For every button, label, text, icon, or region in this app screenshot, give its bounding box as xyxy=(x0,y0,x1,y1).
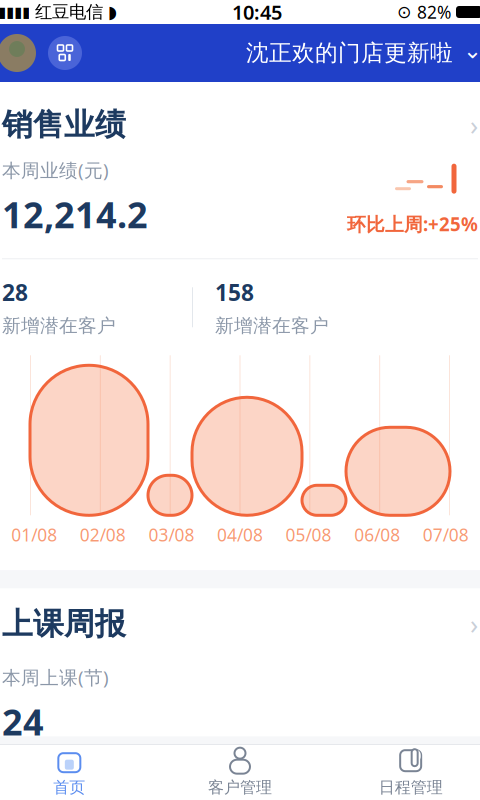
staticText: 10:45 xyxy=(232,0,282,25)
button[interactable]: 销售业绩 xyxy=(0,82,480,158)
staticText: 07/08 xyxy=(423,523,469,546)
staticText: 24 xyxy=(2,698,44,745)
button[interactable]: 个人头像 xyxy=(0,34,36,72)
staticText: 03/08 xyxy=(148,523,194,546)
staticText: ◗ xyxy=(108,2,117,22)
staticText: 红豆电信 xyxy=(35,1,103,23)
staticText: 02/08 xyxy=(80,523,126,546)
staticText: 新增潜在客户 xyxy=(215,314,329,337)
staticText: ⊙ xyxy=(397,2,412,22)
staticText: 上课周报 xyxy=(2,605,126,643)
staticText: 04/08 xyxy=(217,523,263,546)
staticText: › xyxy=(470,606,478,642)
button[interactable]: 日程管理 xyxy=(325,745,480,800)
staticText: 12,214.2 xyxy=(2,190,148,238)
staticText: 客户管理 xyxy=(208,778,272,797)
staticText: › xyxy=(470,107,478,142)
button[interactable]: 上课周报 xyxy=(0,588,480,736)
staticText: ⌄ xyxy=(463,38,480,63)
staticText: 28 xyxy=(2,277,28,307)
staticText: 01/08 xyxy=(11,523,57,546)
staticText: 销售业绩 xyxy=(2,106,126,144)
staticText: 05/08 xyxy=(286,523,332,546)
staticText: ▮▮▮▮ xyxy=(0,4,30,20)
staticText: 本周业绩(元) xyxy=(2,158,109,182)
staticText: 82% xyxy=(417,0,451,23)
staticText: 新增潜在客户 xyxy=(2,314,116,337)
staticText: 06/08 xyxy=(354,523,400,546)
staticText: 首页 xyxy=(53,778,85,797)
button[interactable]: 沈正欢的门店更新啦 xyxy=(246,38,480,68)
button[interactable]: 客户管理 xyxy=(155,745,325,800)
button[interactable]: 应用菜单 xyxy=(48,36,82,70)
staticText: 环比上周:+25% xyxy=(347,212,478,236)
staticText: 158 xyxy=(215,277,254,307)
staticText: 本周上课(节) xyxy=(2,665,109,690)
staticText: 沈正欢的门店更新啦 xyxy=(246,39,453,67)
button[interactable]: 首页 xyxy=(0,745,155,800)
staticText: 日程管理 xyxy=(379,778,443,797)
